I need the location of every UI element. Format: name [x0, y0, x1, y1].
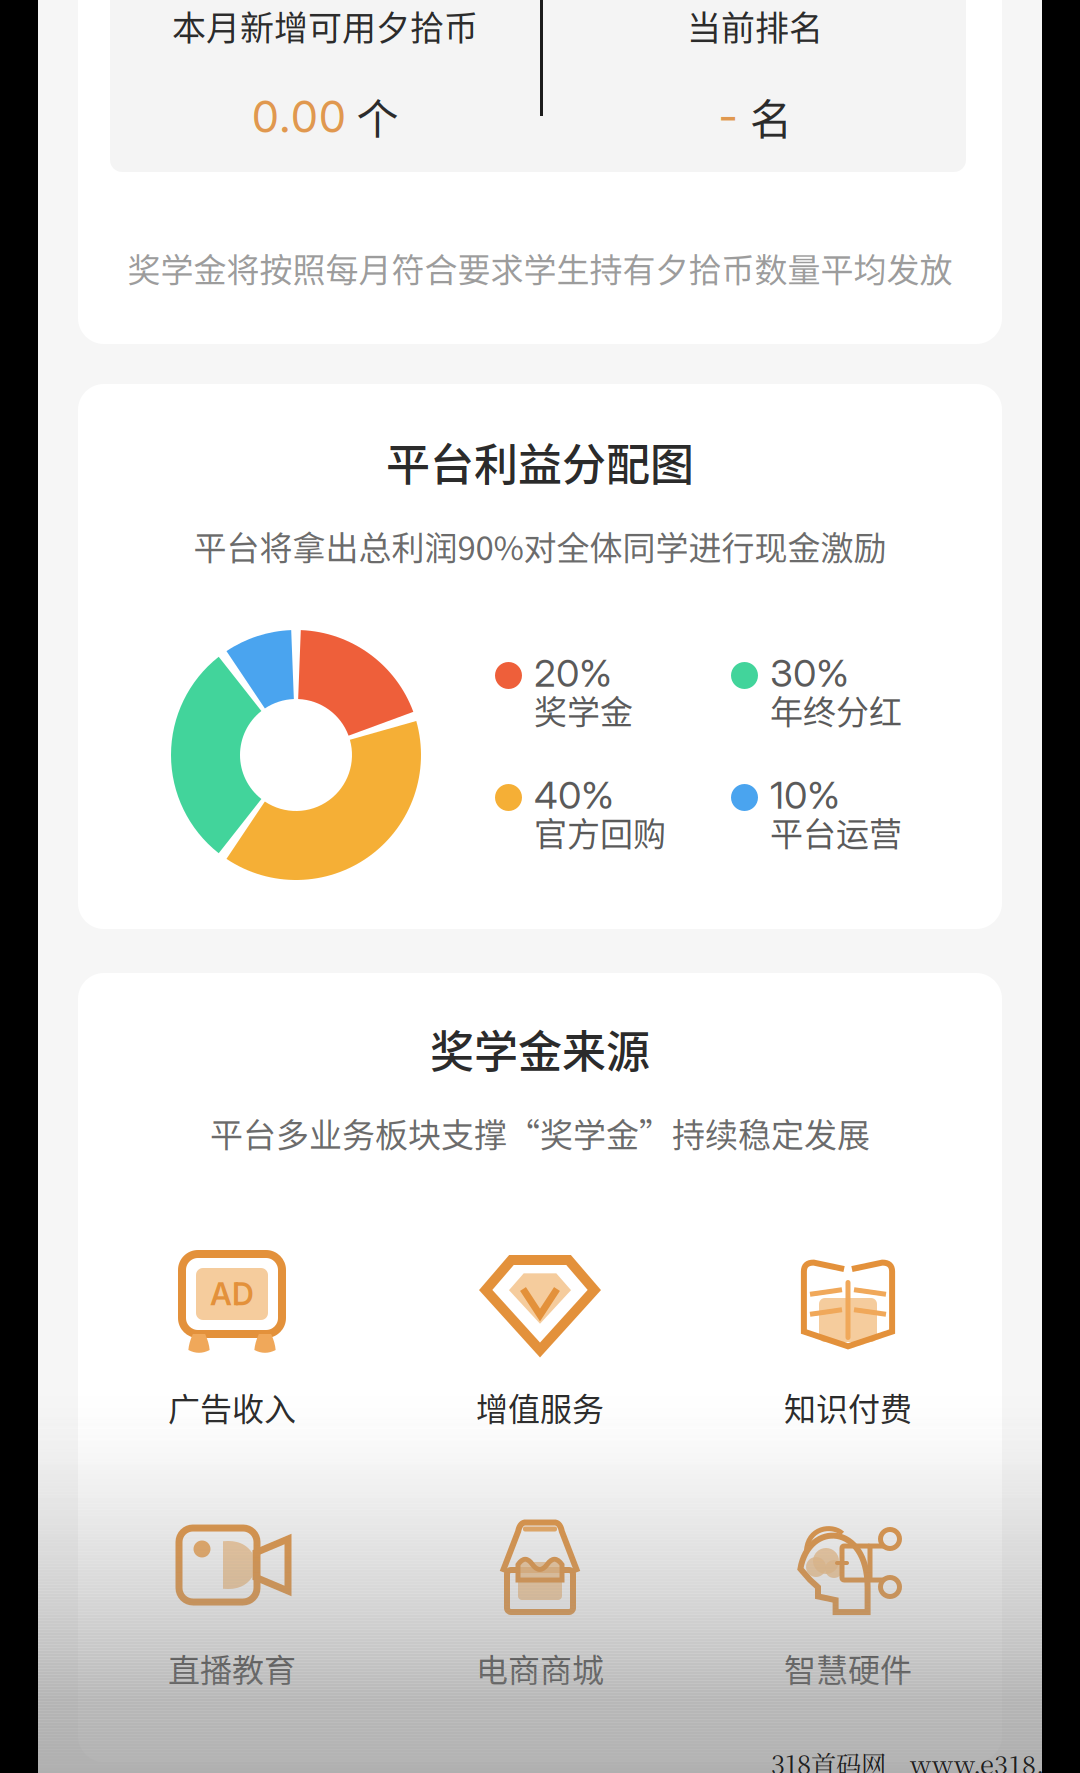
staticText: 官方回购 [534, 808, 666, 856]
staticText: 直播教育 [168, 1645, 296, 1691]
button[interactable]: 电商商城 [386, 1506, 694, 1722]
staticText: 0.00 [251, 90, 346, 143]
staticText: 当前排名 [687, 1, 823, 50]
button[interactable]: 智慧硬件 [694, 1506, 1002, 1722]
staticText: AD [210, 1275, 254, 1312]
staticText: 10% [770, 772, 840, 818]
staticText: 本月新增可用夕拾币 [172, 1, 478, 50]
staticText: 知识付费 [784, 1384, 912, 1430]
staticText: 奖学金 [534, 686, 633, 734]
staticText: 平台多业务板块支撑“奖学金”持续稳定发展 [210, 1109, 870, 1157]
staticText: 智慧硬件 [784, 1645, 912, 1691]
staticText: 广告收入 [168, 1384, 296, 1430]
staticText: - [718, 90, 738, 143]
staticText: 名 [750, 86, 792, 147]
staticText: 年终分红 [770, 686, 902, 734]
staticText: 奖学金将按照每月符合要求学生持有夕拾币数量平均发放 [127, 244, 952, 292]
staticText: 个 [356, 86, 398, 147]
button[interactable]: 直播教育 [78, 1506, 386, 1722]
button[interactable]: 知识付费 [694, 1245, 1002, 1461]
staticText: 奖学金来源 [430, 1017, 650, 1081]
staticText: 电商商城 [476, 1645, 604, 1691]
staticText: 增值服务 [476, 1384, 604, 1430]
staticText: 318首码网 www.e318.c [771, 1745, 1057, 1773]
staticText: 40% [534, 772, 614, 818]
staticText: 20% [534, 650, 612, 696]
staticText: 平台运营 [770, 808, 902, 856]
button[interactable]: 增值服务 [386, 1245, 694, 1461]
button[interactable]: AD [78, 1245, 386, 1461]
staticText: 平台利益分配图 [386, 430, 694, 494]
staticText: 平台将拿出总利润90%对全体同学进行现金激励 [193, 522, 886, 570]
staticText: 30% [770, 650, 849, 696]
